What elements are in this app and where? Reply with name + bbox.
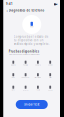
staticText: Iniciar test	[24, 103, 39, 106]
button[interactable]: Batería	[7, 57, 19, 69]
staticText: Batería	[11, 64, 16, 66]
staticText: Sistema	[48, 89, 53, 91]
staticText: Táctil	[36, 89, 39, 91]
button[interactable]: Sensores	[19, 69, 32, 82]
staticText: Pantalla	[23, 64, 28, 66]
staticText: GPS	[12, 89, 15, 91]
staticText: 9:41	[6, 2, 13, 6]
staticText: Diagnóstico de teléfono	[8, 9, 44, 12]
button[interactable]: Back	[5, 8, 8, 12]
staticText: Pruebas disponibles	[9, 50, 39, 53]
staticText: Sensores	[22, 77, 30, 78]
staticText: Selecciona una para empezar el diagnósti…	[9, 54, 40, 55]
staticText: Red	[12, 77, 15, 78]
button[interactable]: GPS	[7, 82, 19, 94]
button[interactable]: Memoria	[19, 82, 32, 94]
button[interactable]: Wi‑Fi	[44, 69, 56, 82]
button[interactable]: Cámara	[32, 57, 44, 69]
staticText: Memoria	[23, 89, 29, 91]
staticText: Micrófono	[34, 77, 41, 78]
button[interactable]: Sonido	[44, 57, 56, 69]
staticText: Cámara	[35, 64, 41, 66]
staticText: Comprueba el estado de tu dispositivo co…	[14, 35, 50, 46]
button[interactable]: Iniciar test	[16, 100, 48, 109]
staticText: Sonido	[48, 64, 53, 66]
button[interactable]: Pantalla	[19, 57, 32, 69]
button[interactable]: Red	[7, 69, 19, 82]
button[interactable]: Sistema	[44, 82, 56, 94]
button[interactable]: Micrófono	[32, 69, 44, 82]
staticText: ‹	[6, 8, 7, 13]
staticText: Wi‑Fi	[49, 77, 51, 78]
button[interactable]: Táctil	[32, 82, 44, 94]
staticText: ▮▮▰	[53, 2, 57, 5]
